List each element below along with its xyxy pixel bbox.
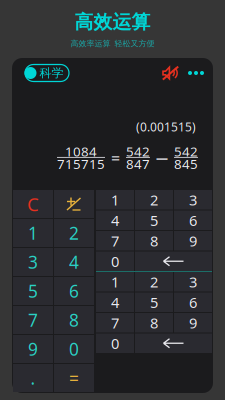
button[interactable]: 9: [174, 313, 212, 332]
staticText: 7: [111, 231, 119, 250]
button[interactable]: 1: [13, 219, 53, 247]
button[interactable]: =: [54, 364, 94, 392]
button[interactable]: 8: [135, 231, 173, 250]
button[interactable]: 3: [174, 190, 212, 209]
staticText: 高效运算: [74, 10, 150, 33]
button[interactable]: 7: [96, 313, 134, 332]
button[interactable]: 8: [135, 313, 173, 332]
staticText: 6: [189, 210, 197, 230]
staticText: 542: [126, 143, 150, 160]
button[interactable]: Mute: [154, 62, 183, 84]
staticText: =: [111, 147, 120, 168]
button[interactable]: 6: [174, 292, 212, 312]
staticText: 科学: [39, 66, 63, 80]
staticText: 9: [189, 231, 197, 250]
staticText: 3: [28, 250, 38, 273]
button[interactable]: 5: [135, 292, 173, 312]
staticText: 542: [174, 143, 198, 160]
staticText: (0.001515): [136, 119, 196, 135]
button[interactable]: 5: [13, 277, 53, 305]
staticText: 4: [111, 292, 119, 312]
button[interactable]: C: [13, 190, 53, 218]
staticText: 高效率运算 轻松又方便: [70, 39, 154, 48]
staticText: 1: [111, 190, 119, 209]
staticText: 6: [69, 279, 79, 302]
button[interactable]: 4: [96, 210, 134, 230]
staticText: 9: [28, 337, 38, 360]
button[interactable]: .: [13, 364, 53, 392]
staticText: 7: [28, 308, 38, 331]
staticText: 5: [28, 279, 38, 302]
staticText: 1: [111, 272, 119, 291]
staticText: 5: [150, 210, 158, 230]
staticText: 2: [150, 190, 158, 209]
staticText: C: [27, 192, 39, 216]
staticText: —: [156, 150, 168, 166]
button[interactable]: 6: [174, 210, 212, 230]
staticText: 3: [189, 272, 197, 291]
button[interactable]: 6: [54, 277, 94, 305]
button[interactable]: 2: [135, 272, 173, 291]
staticText: 2: [69, 221, 79, 244]
staticText: 8: [150, 231, 158, 250]
staticText: 6: [189, 292, 197, 312]
button[interactable]: 0: [96, 333, 134, 353]
staticText: 0: [69, 337, 79, 360]
staticText: 8: [150, 313, 158, 332]
button[interactable]: 科学: [25, 64, 69, 81]
button[interactable]: 1: [96, 272, 134, 291]
staticText: 847: [126, 155, 150, 173]
button[interactable]: More options: [183, 62, 209, 84]
button[interactable]: 4: [96, 292, 134, 312]
button[interactable]: 3: [174, 272, 212, 291]
staticText: 7: [111, 313, 119, 332]
button[interactable]: 9: [174, 231, 212, 250]
staticText: 845: [174, 155, 198, 173]
button[interactable]: 0: [54, 335, 94, 363]
staticText: 715715: [57, 155, 105, 173]
staticText: .: [30, 366, 35, 389]
staticText: 1084: [65, 143, 97, 160]
button[interactable]: 5: [135, 210, 173, 230]
staticText: 9: [189, 313, 197, 332]
staticText: 3: [189, 190, 197, 209]
button[interactable]: 2: [54, 219, 94, 247]
staticText: 0: [111, 251, 119, 271]
button[interactable]: 7: [96, 231, 134, 250]
staticText: 2: [150, 272, 158, 291]
button[interactable]: 2: [135, 190, 173, 209]
button[interactable]: 1: [96, 190, 134, 209]
button[interactable]: 3: [13, 248, 53, 276]
staticText: 0: [111, 333, 119, 353]
staticText: 1: [28, 221, 38, 244]
button[interactable]: Delete: [135, 251, 212, 271]
button[interactable]: Plus minus: [54, 190, 94, 218]
staticText: 4: [69, 250, 79, 273]
button[interactable]: 9: [13, 335, 53, 363]
button[interactable]: 7: [13, 306, 53, 334]
button[interactable]: Delete: [135, 333, 212, 353]
staticText: =: [69, 366, 79, 389]
button[interactable]: 8: [54, 306, 94, 334]
button[interactable]: 0: [96, 251, 134, 271]
staticText: 8: [69, 308, 79, 331]
staticText: 4: [111, 210, 119, 230]
button[interactable]: 4: [54, 248, 94, 276]
staticText: 5: [150, 292, 158, 312]
